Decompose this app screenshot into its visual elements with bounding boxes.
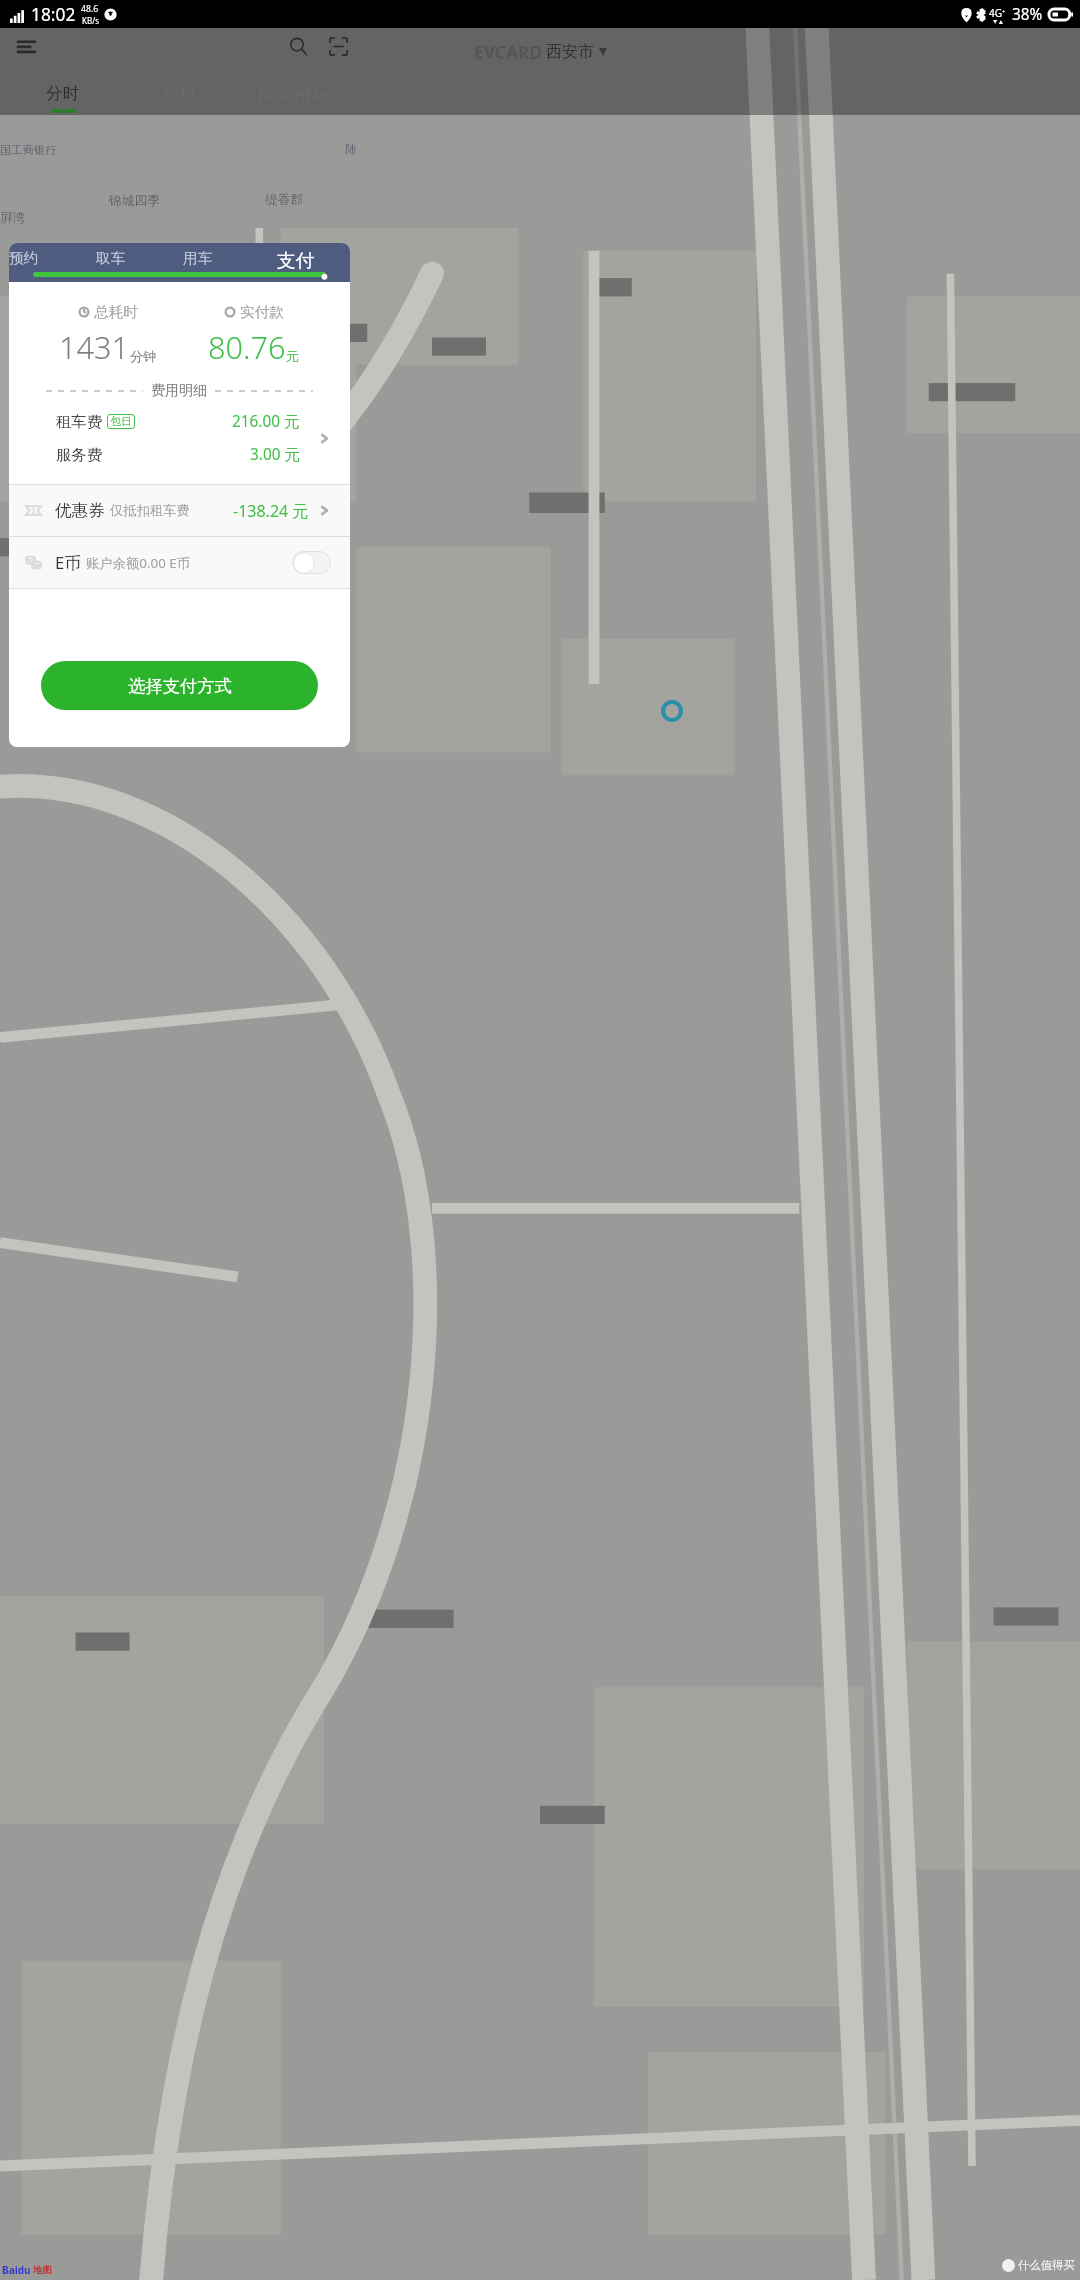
staticText: 80.76 <box>208 326 286 368</box>
staticText: 实付款 <box>240 303 284 321</box>
button[interactable]: EVCARD <box>474 40 607 64</box>
button[interactable]: Use E-coin <box>292 551 331 574</box>
staticText: 38% <box>1012 4 1043 25</box>
button[interactable]: 优惠券 <box>25 485 331 536</box>
staticText: -138.24 元 <box>233 500 309 522</box>
staticText: 国工商银行 <box>0 143 57 157</box>
staticText: 屛湾 <box>0 210 26 226</box>
staticText: 48.6 <box>81 3 99 15</box>
staticText: 缇香郡 <box>265 192 303 208</box>
staticText: 什么值得买 <box>1018 2258 1075 2272</box>
staticText: 216.00 元 <box>232 411 300 432</box>
staticText: 陆 <box>345 142 357 156</box>
staticText: KB/s <box>82 15 99 26</box>
button[interactable]: 选择支付方式 <box>41 661 318 710</box>
staticText: 取车 <box>96 249 126 267</box>
staticText: 服务费 <box>56 445 102 464</box>
staticText: 分钟 <box>130 348 157 365</box>
staticText: 4G⁺ <box>989 6 1006 20</box>
button[interactable]: 支付 <box>277 249 350 273</box>
staticText: 包日 <box>110 415 132 428</box>
button[interactable]: Scan <box>325 33 352 60</box>
button[interactable]: 取车 <box>96 249 181 267</box>
staticText: 用车 <box>183 249 213 267</box>
staticText: 3.00 元 <box>250 444 300 465</box>
button[interactable]: 分时 <box>23 83 103 113</box>
staticText: 1431 <box>59 326 130 368</box>
staticText: 元 <box>286 348 300 365</box>
staticText: Baidu <box>2 2263 31 2277</box>
button[interactable]: Menu <box>13 33 40 60</box>
staticText: E币 <box>55 551 81 574</box>
staticText: 预约 <box>9 249 39 267</box>
staticText: 仅抵扣租车费 <box>110 502 190 519</box>
staticText: 西安市 <box>546 42 594 62</box>
button[interactable]: 用车 <box>183 249 268 267</box>
button[interactable]: Search <box>285 33 312 60</box>
staticText: 费用明细 <box>151 382 207 400</box>
button[interactable]: 租车费 <box>9 411 350 465</box>
staticText: 支付 <box>277 249 315 273</box>
staticText: 总耗时 <box>94 303 138 321</box>
button[interactable]: 预约 <box>9 249 94 267</box>
staticText: 选择支付方式 <box>128 675 232 697</box>
button[interactable]: E币 <box>25 537 331 588</box>
staticText: 锦城四季 <box>109 193 160 209</box>
staticText: EVCARD <box>474 40 542 64</box>
staticText: 优惠券 <box>55 500 105 521</box>
staticText: 租车费 <box>56 412 102 431</box>
staticText: 地图 <box>33 2264 52 2276</box>
staticText: 18:02 <box>31 2 76 26</box>
staticText: 账户余额0.00 E币 <box>86 554 190 572</box>
staticText: 分时 <box>46 83 80 104</box>
